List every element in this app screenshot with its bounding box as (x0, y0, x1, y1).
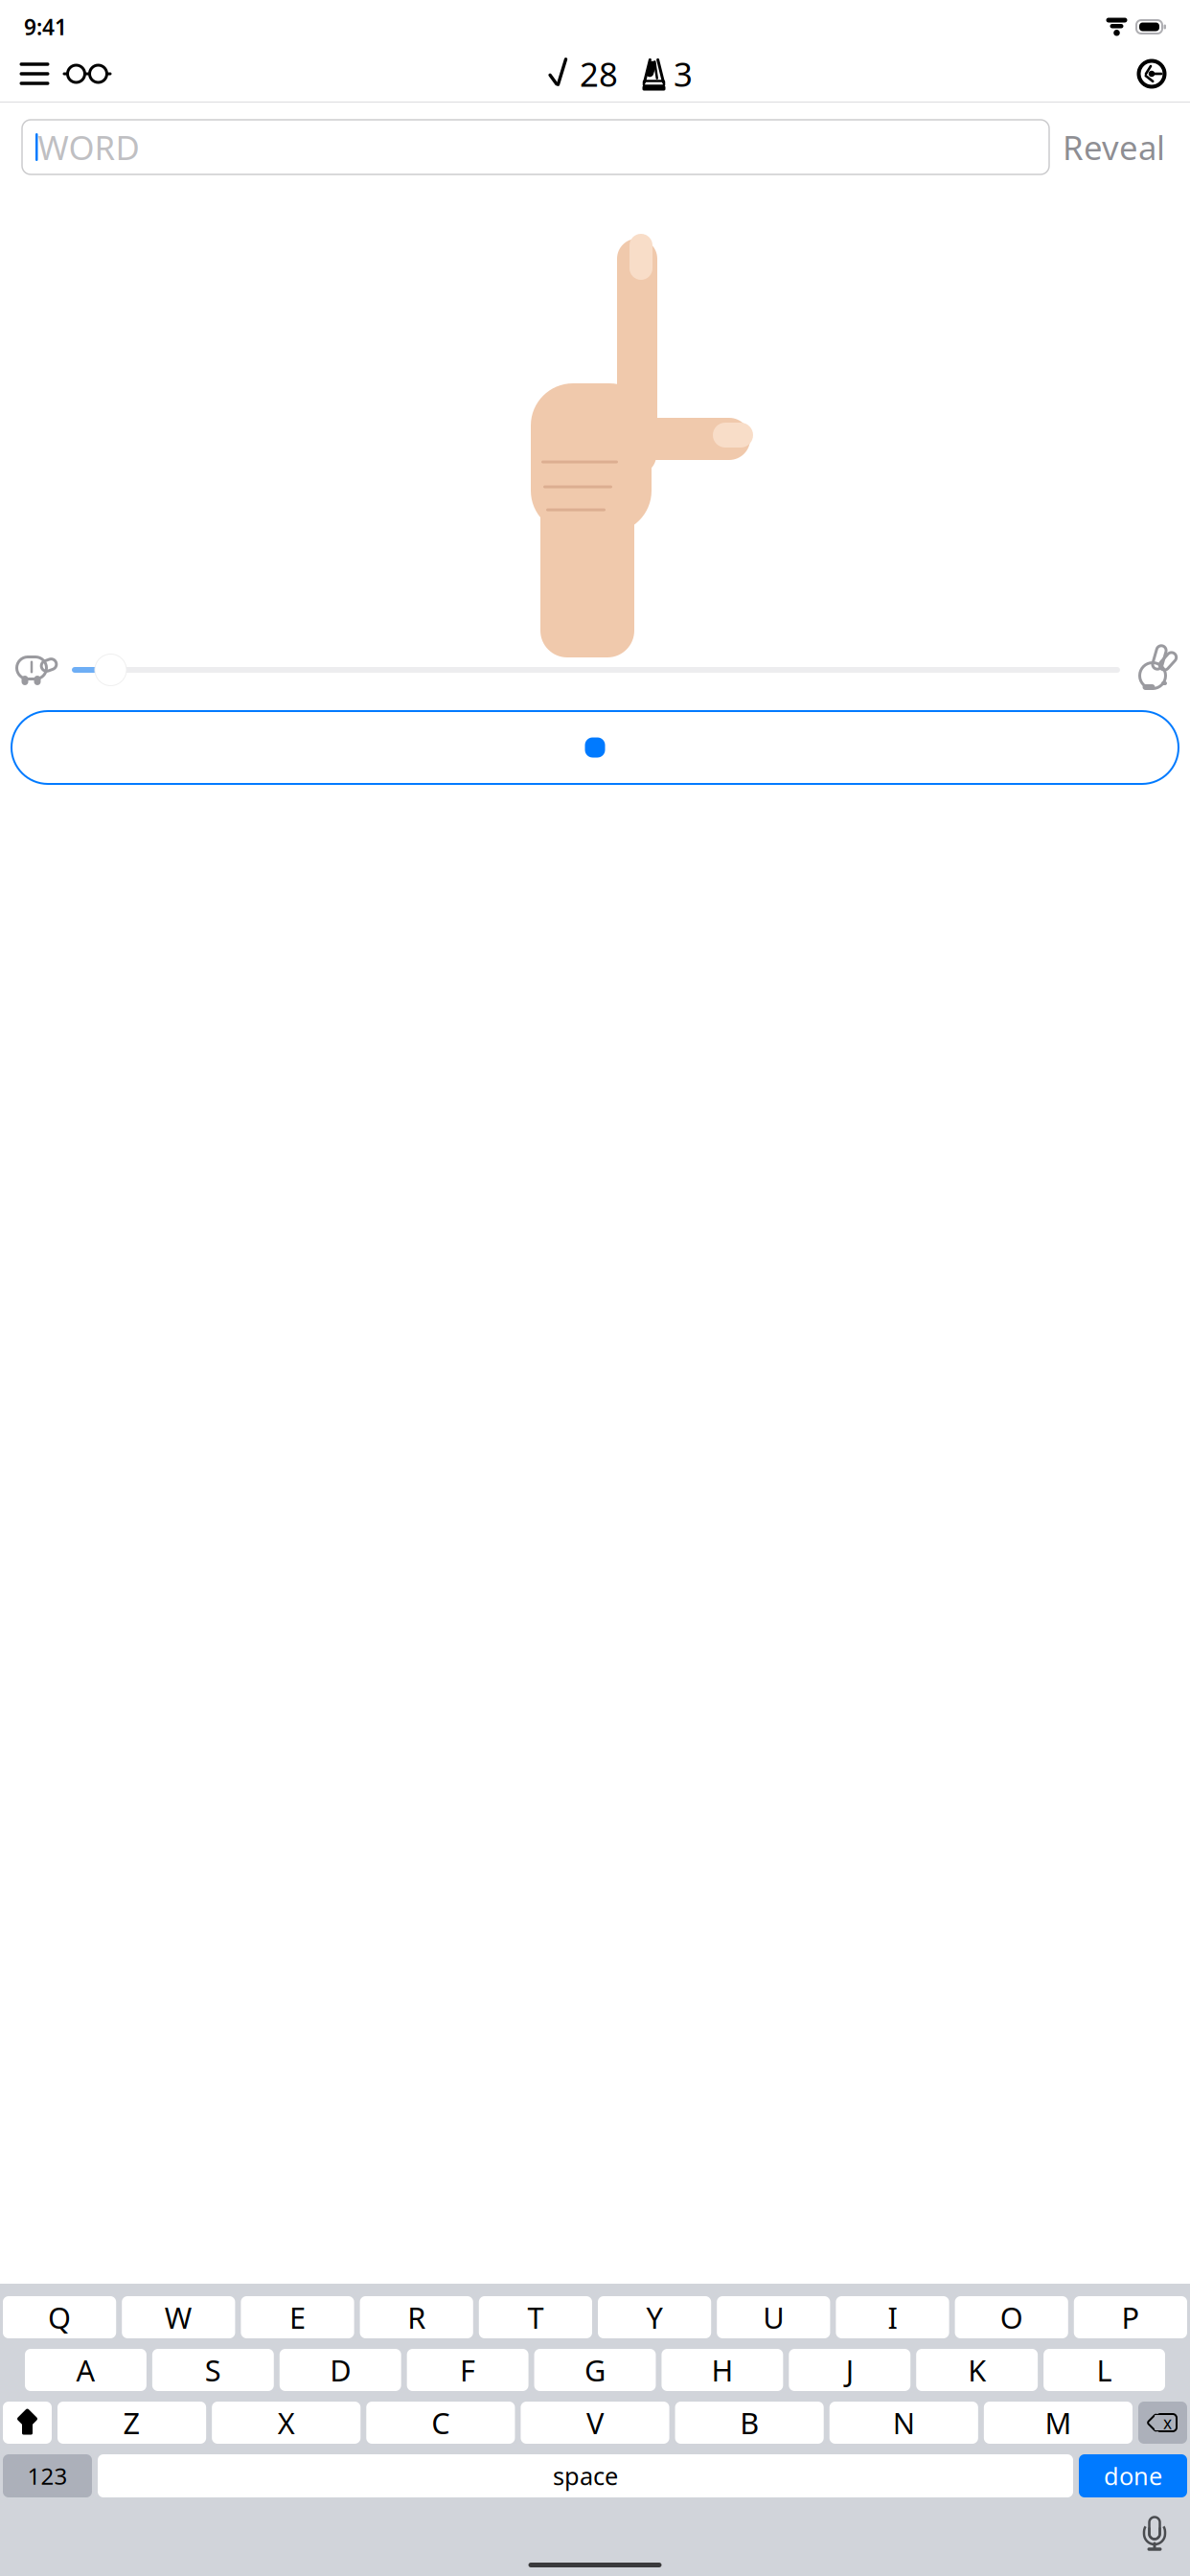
button[interactable]: H (661, 2349, 783, 2391)
staticText: M (1045, 2403, 1072, 2442)
staticText: 28 (580, 52, 618, 96)
staticText: P (1121, 2298, 1140, 2337)
staticText: WORD (38, 125, 139, 169)
button[interactable]: Shift (3, 2402, 52, 2444)
button[interactable]: Settings (1129, 52, 1175, 96)
button[interactable]: 28 (549, 52, 618, 96)
button[interactable]: W (122, 2296, 235, 2338)
button[interactable]: J (789, 2349, 910, 2391)
button[interactable]: V (521, 2402, 669, 2444)
button[interactable]: I (836, 2296, 949, 2338)
button[interactable]: P (1074, 2296, 1187, 2338)
button[interactable]: C (366, 2402, 515, 2444)
staticText: U (763, 2298, 784, 2337)
button[interactable]: WORD (22, 120, 1049, 174)
staticText: V (586, 2403, 604, 2442)
button[interactable]: L (1044, 2349, 1165, 2391)
button[interactable]: N (829, 2402, 978, 2444)
staticText: 9:41 (24, 12, 67, 41)
button[interactable]: 123 (3, 2454, 92, 2497)
staticText: W (165, 2298, 192, 2337)
button[interactable]: Delete (1138, 2402, 1187, 2444)
button[interactable]: M (984, 2402, 1133, 2444)
button[interactable]: D (280, 2349, 401, 2391)
staticText: K (968, 2350, 986, 2389)
staticText: F (460, 2350, 475, 2389)
staticText: G (584, 2350, 606, 2389)
button[interactable]: Stop (11, 711, 1179, 784)
staticText: R (407, 2298, 426, 2337)
button[interactable]: Q (3, 2296, 116, 2338)
button[interactable]: T (479, 2296, 592, 2338)
button[interactable]: R (360, 2296, 473, 2338)
button[interactable]: X (212, 2402, 360, 2444)
button[interactable]: 3 (641, 52, 693, 96)
staticText: J (846, 2350, 854, 2389)
button[interactable]: Dictate (1133, 2511, 1177, 2555)
button[interactable]: Reading mode (61, 52, 113, 96)
staticText: Q (48, 2298, 71, 2337)
staticText: S (205, 2350, 221, 2389)
staticText: Z (123, 2403, 140, 2442)
button[interactable]: O (955, 2296, 1068, 2338)
button[interactable]: S (152, 2349, 274, 2391)
staticText: B (740, 2403, 759, 2442)
staticText: 123 (27, 2461, 68, 2491)
staticText: A (76, 2350, 95, 2389)
button[interactable]: Z (57, 2402, 206, 2444)
staticText: Reveal (1063, 125, 1165, 169)
staticText: O (1000, 2298, 1023, 2337)
staticText: C (432, 2403, 450, 2442)
button[interactable]: B (675, 2402, 824, 2444)
staticText: E (289, 2298, 306, 2337)
staticText: x (1163, 2412, 1172, 2434)
staticText: space (553, 2460, 618, 2492)
staticText: D (330, 2350, 351, 2389)
button[interactable]: F (407, 2349, 529, 2391)
staticText: Y (646, 2298, 663, 2337)
button[interactable]: Reveal (1049, 120, 1179, 174)
button[interactable]: done (1079, 2454, 1187, 2497)
button[interactable]: Menu (13, 52, 56, 96)
button[interactable]: space (98, 2454, 1073, 2497)
staticText: X (278, 2403, 295, 2442)
staticText: 3 (674, 52, 693, 96)
staticText: done (1104, 2460, 1162, 2492)
button[interactable]: Y (598, 2296, 711, 2338)
button[interactable]: G (534, 2349, 656, 2391)
staticText: I (888, 2298, 897, 2337)
staticText: T (527, 2298, 544, 2337)
button[interactable]: Playback speed (72, 650, 1120, 690)
button[interactable]: K (916, 2349, 1038, 2391)
staticText: L (1097, 2350, 1112, 2389)
button[interactable]: E (241, 2296, 354, 2338)
staticText: N (893, 2403, 915, 2442)
staticText: H (711, 2350, 733, 2389)
button[interactable]: U (717, 2296, 830, 2338)
button[interactable]: A (25, 2349, 146, 2391)
